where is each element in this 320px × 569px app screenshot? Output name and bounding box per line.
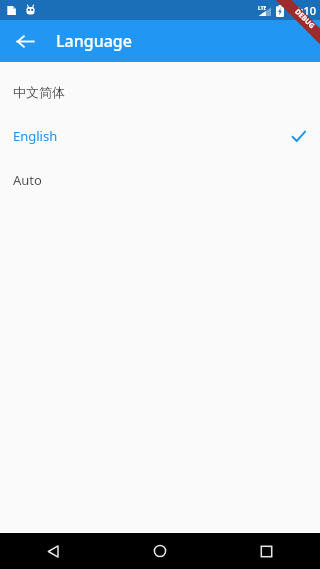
staticText: 10:10 xyxy=(288,3,317,18)
button[interactable]: 中文简体 xyxy=(0,70,320,114)
button[interactable]: Back xyxy=(6,22,44,60)
staticText: English xyxy=(13,127,58,145)
button[interactable]: English xyxy=(0,114,320,158)
staticText: 中文简体 xyxy=(13,84,65,100)
button[interactable]: Home xyxy=(106,533,213,569)
staticText: Language xyxy=(56,30,132,52)
button[interactable]: Recents xyxy=(213,533,320,569)
staticText: Auto xyxy=(13,171,42,189)
button[interactable]: Auto xyxy=(0,158,320,202)
button[interactable]: Back xyxy=(0,533,106,569)
staticText: LTE xyxy=(258,5,267,12)
